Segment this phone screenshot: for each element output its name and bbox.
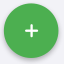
- button[interactable]: Add: [4, 3, 58, 58]
